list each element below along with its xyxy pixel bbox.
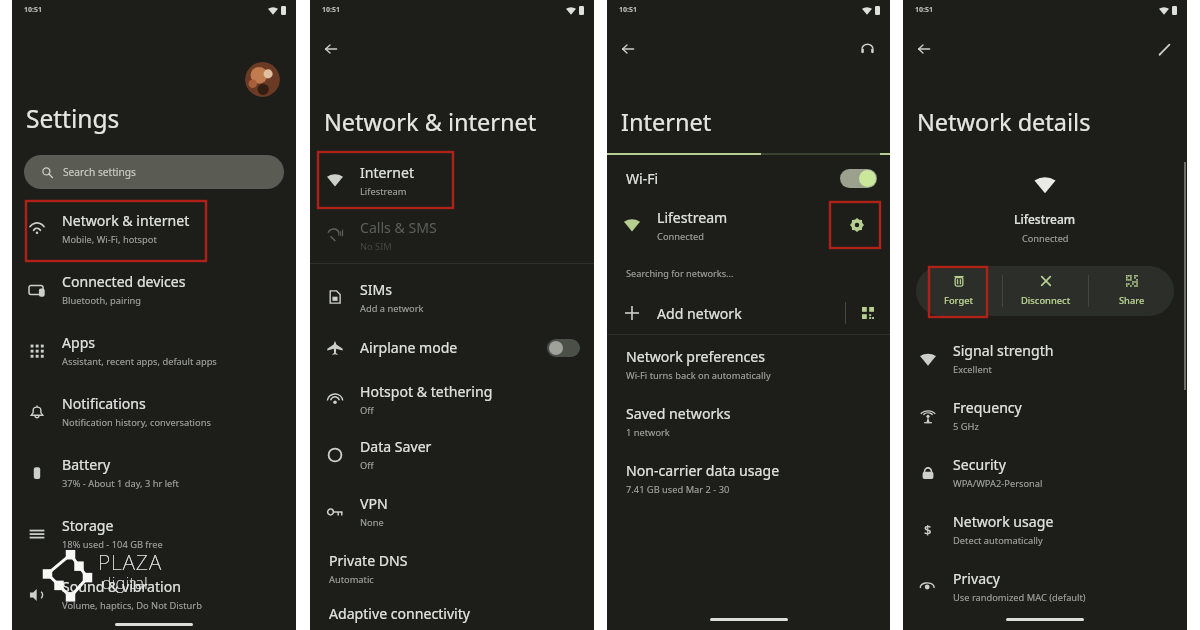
staticText: Calls & SMS [360, 218, 437, 237]
staticText: 1 network [626, 426, 670, 439]
staticText: Lifestream [1014, 211, 1076, 227]
staticText: Lifestream [360, 185, 407, 198]
staticText: Wi-Fi turns back on automatically [626, 369, 771, 382]
button[interactable]: Disconnect [1003, 266, 1088, 316]
button[interactable]: Share network [1089, 266, 1174, 316]
staticText: Mobile, Wi-Fi, hotspot [62, 233, 157, 246]
staticText: No SIM [360, 240, 392, 253]
button[interactable]: Non-carrier data usage [607, 450, 890, 507]
staticText: Connected devices [62, 272, 186, 291]
button[interactable]: $ [903, 501, 1187, 558]
staticText: Bluetooth, pairing [62, 294, 142, 307]
staticText: Connected [657, 230, 705, 243]
button[interactable]: Signal strength [903, 330, 1187, 387]
staticText: Connected [1022, 232, 1069, 245]
staticText: Hotspot & tethering [360, 382, 493, 401]
staticText: Notifications [62, 394, 146, 413]
button[interactable]: Edit [1152, 37, 1176, 61]
button[interactable]: SIMs [310, 271, 594, 323]
button[interactable]: Storage [12, 503, 296, 564]
button[interactable]: Back [318, 36, 344, 62]
button[interactable]: Battery [12, 442, 296, 503]
staticText: Privacy [953, 569, 1001, 588]
staticText: Storage [62, 516, 114, 535]
button[interactable]: Airplane mode toggle [547, 339, 580, 357]
staticText: Battery [62, 455, 111, 474]
button[interactable]: Airplane mode [310, 323, 594, 372]
staticText: digital [102, 572, 149, 594]
staticText: 37% - About 1 day, 3 hr left [62, 477, 179, 490]
button[interactable]: Security [903, 444, 1187, 501]
button[interactable]: Back [911, 36, 937, 62]
button[interactable]: VPN [310, 483, 594, 540]
staticText: Searching for networks... [626, 267, 734, 280]
button[interactable]: Frequency [903, 387, 1187, 444]
staticText: Saved networks [626, 404, 731, 423]
staticText: Network usage [953, 512, 1054, 531]
staticText: Network & internet [62, 211, 190, 230]
staticText: Forget [944, 294, 974, 307]
staticText: Airplane mode [360, 338, 458, 357]
button[interactable]: Wi-Fi [607, 155, 890, 201]
staticText: Internet [360, 163, 415, 182]
staticText: Automatic [329, 573, 374, 586]
staticText: Non-carrier data usage [626, 461, 780, 480]
staticText: 10:51 [24, 5, 42, 15]
staticText: Internet [621, 106, 712, 138]
button[interactable]: Network settings [845, 213, 869, 237]
button[interactable]: Help [855, 37, 879, 61]
button[interactable]: Apps [12, 320, 296, 381]
staticText: Add a network [360, 302, 424, 315]
staticText: 10:51 [619, 5, 637, 15]
staticText: Adaptive connectivity [329, 604, 470, 623]
staticText: Notification history, conversations [62, 416, 211, 429]
button[interactable]: Adaptive connectivity [310, 597, 594, 630]
button[interactable]: Data Saver [310, 426, 594, 483]
button[interactable]: Add network [607, 296, 890, 330]
button[interactable]: Saved networks [607, 393, 890, 450]
staticText: Signal strength [953, 341, 1054, 360]
staticText: Disconnect [1021, 294, 1071, 307]
staticText: Detect automatically [953, 534, 1043, 547]
staticText: None [360, 516, 384, 529]
staticText: Excellent [953, 363, 992, 376]
staticText: Volume, haptics, Do Not Disturb [62, 599, 202, 612]
button[interactable]: Connected devices [12, 259, 296, 320]
button[interactable]: Sound & vibration [12, 564, 296, 625]
button[interactable]: Scan QR code [846, 296, 890, 330]
button[interactable]: Private DNS [310, 540, 594, 597]
button[interactable]: Account [245, 62, 280, 97]
staticText: Off [360, 459, 374, 472]
staticText: 10:51 [915, 5, 933, 15]
staticText: Network details [917, 106, 1091, 138]
staticText: SIMs [360, 280, 393, 299]
staticText: Frequency [953, 398, 1022, 417]
button[interactable]: Forget network [916, 266, 1002, 316]
button[interactable]: Network preferences [607, 336, 890, 393]
button[interactable]: Internet [310, 153, 594, 207]
staticText: Private DNS [329, 551, 408, 570]
button[interactable]: Calls & SMS [310, 207, 594, 263]
button[interactable]: Network & internet [12, 198, 296, 259]
staticText: Search settings [63, 165, 136, 179]
staticText: Assistant, recent apps, default apps [62, 355, 217, 368]
staticText: PLAZA [98, 548, 163, 577]
staticText: Lifestream [657, 208, 728, 227]
staticText: WPA/WPA2-Personal [953, 477, 1043, 490]
button[interactable]: Wi-Fi toggle [840, 169, 877, 188]
staticText: Security [953, 455, 1006, 474]
button[interactable]: Notifications [12, 381, 296, 442]
button[interactable]: Back [615, 36, 641, 62]
staticText: Use randomized MAC (default) [953, 591, 1086, 604]
staticText: Settings [26, 102, 120, 135]
staticText: 18% used - 104 GB free [62, 538, 163, 551]
button[interactable]: Lifestream [607, 201, 890, 249]
button[interactable]: Privacy [903, 558, 1187, 615]
staticText: 5 GHz [953, 420, 979, 433]
staticText: Apps [62, 333, 96, 352]
button[interactable]: Hotspot & tethering [310, 372, 594, 426]
staticText: VPN [360, 494, 388, 513]
staticText: Data Saver [360, 437, 432, 456]
staticText: Network & internet [324, 106, 537, 138]
button[interactable]: Search settings [24, 155, 284, 189]
